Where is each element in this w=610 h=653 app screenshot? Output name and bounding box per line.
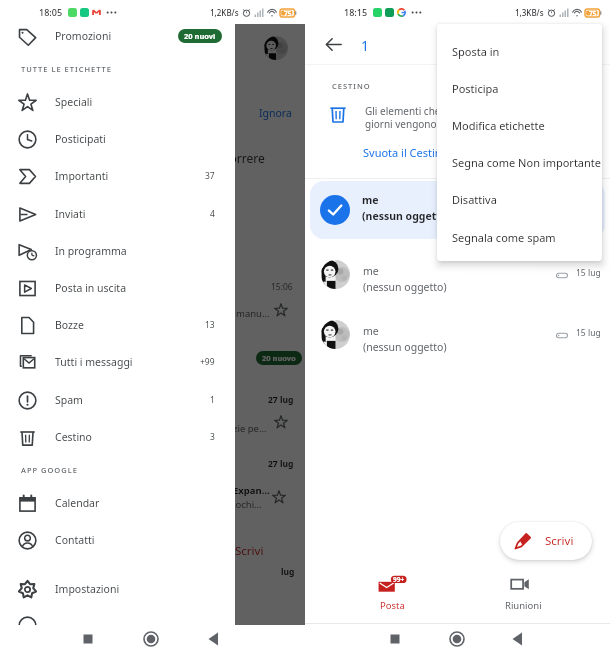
staticText: 37 bbox=[205, 170, 215, 182]
staticText: 15 lug bbox=[576, 267, 601, 279]
staticText: me bbox=[363, 324, 379, 338]
staticText: 99+ bbox=[393, 575, 405, 584]
staticText: 20 nuovo bbox=[262, 353, 296, 363]
staticText: 3 bbox=[210, 431, 215, 443]
button[interactable]: Contatti bbox=[0, 522, 235, 558]
staticText: Sposta in bbox=[452, 44, 500, 59]
staticText: 75 bbox=[589, 9, 597, 18]
button[interactable]: Inviati bbox=[0, 196, 235, 232]
button[interactable]: Modifica etichette bbox=[437, 107, 602, 144]
staticText: Percorrere bbox=[235, 150, 265, 166]
button[interactable]: 99+ bbox=[352, 573, 432, 619]
staticText: iochi… bbox=[235, 498, 262, 511]
staticText: me bbox=[363, 264, 379, 278]
staticText: +99 bbox=[200, 356, 215, 368]
staticText: Speciali bbox=[55, 95, 93, 109]
button[interactable]: me bbox=[310, 181, 605, 239]
staticText: 18:05 bbox=[39, 6, 63, 18]
staticText: Expan… bbox=[235, 484, 270, 497]
staticText: 13 bbox=[205, 319, 215, 331]
staticText: APP GOOGLE bbox=[21, 465, 78, 475]
staticText: Tutti i messaggi bbox=[55, 355, 133, 369]
staticText: (nessun oggetto) bbox=[363, 280, 447, 294]
staticText: Riunioni bbox=[505, 599, 542, 612]
button[interactable]: Promozioni bbox=[0, 18, 235, 54]
staticText: Spam bbox=[55, 393, 83, 407]
staticText: Modifica etichette bbox=[452, 118, 545, 133]
button[interactable]: Back bbox=[319, 30, 347, 58]
staticText: Scrivi bbox=[545, 533, 574, 549]
staticText: Scrivi bbox=[235, 543, 264, 559]
staticText: Posticipa bbox=[452, 81, 499, 96]
staticText: 20 nuovi bbox=[184, 31, 216, 41]
staticText: manu… bbox=[236, 307, 270, 320]
staticText: Impostazioni bbox=[55, 582, 120, 596]
staticText: (nessun oggetto) bbox=[362, 209, 451, 223]
button[interactable]: Posticipati bbox=[0, 121, 235, 157]
staticText: Disattiva bbox=[452, 192, 497, 207]
button[interactable]: Impostazioni bbox=[0, 571, 235, 607]
button[interactable]: me bbox=[305, 245, 610, 303]
staticText: giorni vengono el bbox=[365, 117, 448, 131]
staticText: Posta bbox=[380, 599, 405, 612]
staticText: 27 lug bbox=[268, 394, 294, 406]
staticText: 15 lug bbox=[576, 327, 601, 339]
staticText: Cestino bbox=[55, 430, 92, 444]
button[interactable]: Tutti i messaggi bbox=[0, 344, 235, 380]
staticText: 18:15 bbox=[344, 6, 368, 18]
staticText: zie pe… bbox=[235, 422, 267, 435]
button[interactable]: Cestino bbox=[0, 419, 235, 455]
button[interactable]: Segna come Non importante bbox=[437, 144, 602, 181]
button[interactable]: Bozze bbox=[0, 307, 235, 343]
staticText: Promozioni bbox=[55, 29, 112, 43]
staticText: Importanti bbox=[55, 169, 109, 183]
staticText: CESTINO bbox=[332, 81, 371, 91]
button[interactable]: me bbox=[305, 305, 610, 363]
staticText: me bbox=[362, 193, 379, 207]
staticText: Posta in uscita bbox=[55, 281, 127, 295]
staticText: 4 bbox=[210, 208, 215, 220]
staticText: Svuota il Cestino bbox=[363, 145, 449, 160]
button[interactable]: Speciali bbox=[0, 84, 235, 120]
staticText: Segna come Non importante bbox=[452, 155, 601, 170]
staticText: Ignora bbox=[259, 106, 292, 120]
staticText: Contatti bbox=[55, 533, 95, 547]
staticText: In programma bbox=[55, 244, 127, 258]
button[interactable]: Calendar bbox=[0, 485, 235, 521]
button[interactable]: Importanti bbox=[0, 158, 235, 194]
staticText: Inviati bbox=[55, 207, 86, 221]
staticText: Posticipati bbox=[55, 132, 106, 146]
staticText: 15:06 bbox=[271, 281, 293, 293]
staticText: TUTTE LE ETICHETTE bbox=[21, 64, 112, 74]
button[interactable]: Svuota il Cestino bbox=[363, 145, 449, 160]
button[interactable]: Disattiva bbox=[437, 181, 602, 218]
button[interactable]: Sposta in bbox=[437, 33, 602, 70]
button[interactable]: Posta in uscita bbox=[0, 270, 235, 306]
button[interactable]: Segnala come spam bbox=[437, 219, 602, 256]
staticText: Calendar bbox=[55, 496, 100, 510]
staticText: (nessun oggetto) bbox=[363, 340, 447, 354]
staticText: 1,3KB/s bbox=[515, 7, 544, 18]
button[interactable]: Scrivi bbox=[500, 522, 592, 560]
staticText: lug bbox=[281, 566, 295, 578]
staticText: Bozze bbox=[55, 318, 84, 332]
staticText: 1,2KB/s bbox=[210, 7, 239, 18]
staticText: Gli elementi che s bbox=[365, 104, 448, 118]
staticText: 27 lug bbox=[268, 458, 294, 470]
staticText: 75 bbox=[284, 9, 292, 18]
staticText: Segnala come spam bbox=[452, 230, 556, 245]
staticText: 1 bbox=[361, 36, 370, 55]
button[interactable]: Posticipa bbox=[437, 70, 602, 107]
button[interactable]: Riunioni bbox=[483, 573, 563, 619]
button[interactable]: In programma bbox=[0, 233, 235, 269]
staticText: 1 bbox=[210, 394, 215, 406]
button[interactable]: Spam bbox=[0, 382, 235, 418]
